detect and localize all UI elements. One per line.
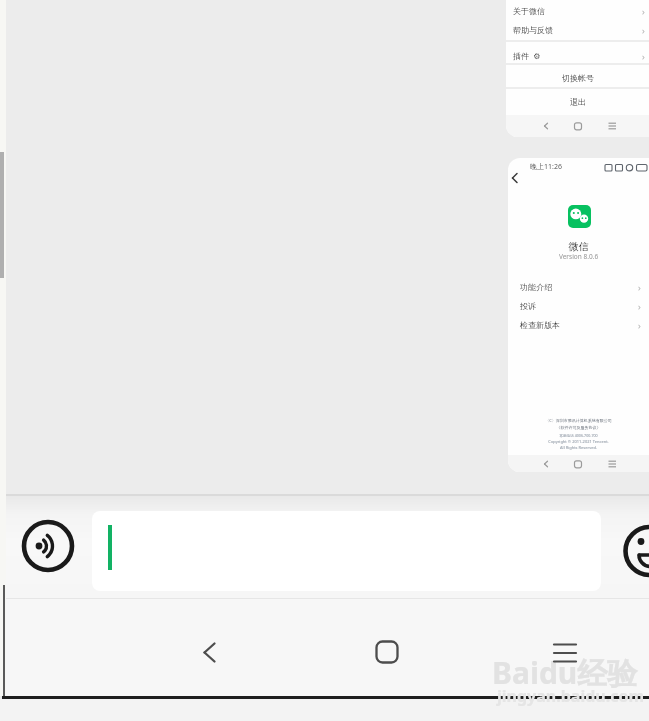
staticText: 微信 — [508, 240, 649, 253]
staticText: Copyright © 2011-2021 Tencent. — [508, 439, 649, 444]
staticText: › — [638, 319, 641, 331]
button[interactable]: 检查新版本 — [508, 316, 649, 333]
staticText: › — [642, 50, 645, 62]
staticText: 晚上11:26 — [530, 162, 562, 172]
staticText: 客服电话 4006-700-700 — [508, 433, 649, 438]
staticText: › — [638, 281, 641, 293]
staticText: › — [642, 5, 645, 17]
staticText: 功能介绍 — [520, 282, 552, 292]
button[interactable]: 退出 — [506, 94, 649, 110]
button[interactable] — [21, 519, 76, 574]
staticText: 切换帐号 — [562, 73, 594, 83]
staticText: jingyan.baidu.com — [497, 685, 645, 707]
staticText: 《软件许可及服务协议》 — [508, 425, 649, 430]
button[interactable]: 帮助与反馈 — [506, 21, 649, 38]
staticText: 帮助与反馈 — [513, 25, 553, 35]
button[interactable]: 关于微信 — [506, 2, 649, 19]
button[interactable]: 插件 ⚙ — [506, 47, 649, 64]
staticText: Version 8.0.6 — [508, 252, 649, 261]
button[interactable] — [185, 630, 235, 676]
button[interactable]: 切换帐号 — [506, 70, 649, 86]
staticText: › — [642, 24, 645, 36]
staticText: › — [638, 300, 641, 312]
staticText: 检查新版本 — [520, 320, 560, 330]
button[interactable] — [92, 511, 601, 591]
button[interactable] — [362, 630, 412, 676]
staticText: 退出 — [570, 97, 586, 107]
staticText: 〈C〉深圳市腾讯计算机系统有限公司 — [508, 418, 649, 423]
button[interactable] — [620, 524, 649, 579]
button[interactable] — [540, 630, 590, 676]
button[interactable]: 投诉 — [508, 297, 649, 314]
staticText: 关于微信 — [513, 6, 545, 16]
staticText: 插件 ⚙ — [513, 50, 541, 61]
button[interactable]: 功能介绍 — [508, 278, 649, 295]
staticText: All Rights Reserved. — [508, 445, 649, 450]
staticText: Baidu经验 — [492, 652, 638, 693]
staticText: 投诉 — [520, 301, 536, 311]
